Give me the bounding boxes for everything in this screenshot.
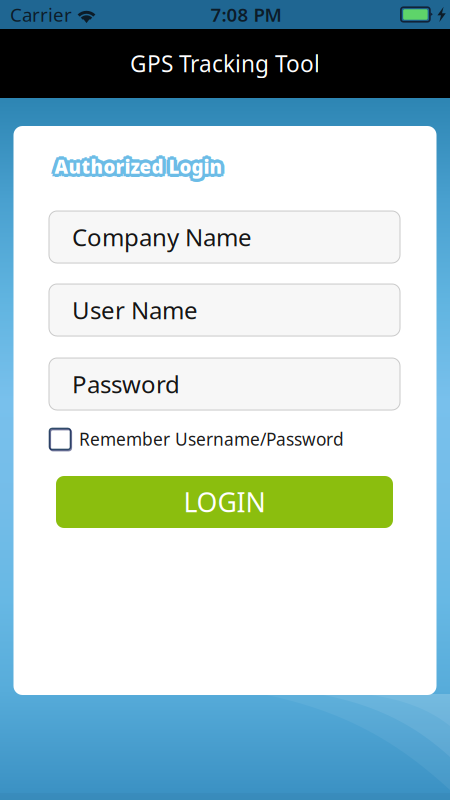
staticText: Authorized Login bbox=[57, 156, 225, 181]
staticText: Carrier bbox=[10, 2, 72, 27]
staticText: 7:08 PM bbox=[210, 2, 281, 27]
staticText: Authorized Login bbox=[54, 152, 222, 177]
staticText: LOGIN bbox=[183, 484, 265, 520]
staticText: Remember Username/Password bbox=[79, 427, 344, 450]
staticText: Authorized Login bbox=[57, 151, 225, 176]
button[interactable]: Password bbox=[49, 358, 400, 410]
staticText: Authorized Login bbox=[56, 154, 224, 179]
staticText: Password bbox=[72, 368, 180, 400]
button[interactable]: Remember Username/Password bbox=[49, 427, 400, 451]
staticText: GPS Tracking Tool bbox=[130, 48, 320, 78]
staticText: User Name bbox=[72, 294, 198, 326]
staticText: Authorized Login bbox=[52, 156, 220, 181]
staticText: Authorized Login bbox=[54, 157, 222, 182]
staticText: Company Name bbox=[72, 221, 252, 253]
button[interactable]: Company Name bbox=[49, 211, 400, 263]
staticText: Authorized Login bbox=[54, 156, 222, 180]
staticText: Authorized Login bbox=[51, 154, 219, 179]
button[interactable]: User Name bbox=[49, 284, 400, 336]
button[interactable]: LOGIN bbox=[56, 476, 393, 528]
staticText: Authorized Login bbox=[52, 151, 220, 176]
staticText: Authorized Login bbox=[58, 154, 226, 179]
staticText: Authorized Login bbox=[53, 154, 221, 179]
staticText: Authorized Login bbox=[54, 151, 222, 175]
staticText: Authorized Login bbox=[54, 154, 222, 179]
